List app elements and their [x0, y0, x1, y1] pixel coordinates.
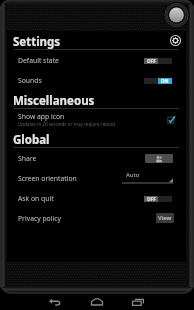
button[interactable]: Ask on quit, off — [144, 196, 172, 202]
button[interactable]: Show app icon — [7, 109, 186, 129]
staticText: Privacy policy — [18, 214, 61, 223]
button[interactable]: Sounds — [7, 70, 186, 90]
button[interactable]: Default state — [7, 50, 186, 70]
staticText: Sounds — [18, 76, 42, 85]
staticText: Default state — [18, 56, 59, 65]
staticText: Updates in 20 seconds or may require reb… — [18, 121, 116, 127]
button[interactable]: Ask on quit — [7, 188, 186, 208]
staticText: Show app icon — [18, 112, 65, 121]
button[interactable]: Show app icon, checked — [167, 116, 175, 124]
button[interactable]: Default state, off — [144, 58, 172, 64]
button[interactable]: Home — [91, 296, 103, 308]
button[interactable]: Share — [145, 154, 173, 163]
staticText: Share — [18, 154, 37, 163]
staticText: Global — [13, 132, 50, 148]
button[interactable]: Global — [7, 129, 186, 148]
button[interactable]: Share — [7, 148, 186, 168]
button[interactable]: Miscellaneous — [7, 90, 186, 109]
button[interactable]: Sounds, on — [144, 78, 172, 84]
button[interactable]: Privacy policy — [7, 208, 186, 228]
staticText: View — [158, 214, 172, 222]
staticText: Screen orientation — [18, 174, 77, 183]
button[interactable]: Settings — [7, 31, 186, 50]
staticText: Miscellaneous — [13, 93, 95, 109]
button[interactable]: Settings — [170, 35, 181, 46]
button[interactable]: View — [156, 213, 174, 223]
staticText: Ask on quit — [18, 194, 54, 203]
button[interactable]: Auto — [122, 171, 173, 185]
staticText: OFF — [147, 58, 156, 64]
staticText: OFF — [147, 196, 156, 202]
button[interactable]: Back — [49, 296, 61, 308]
staticText: ON — [161, 78, 169, 84]
staticText: Auto — [126, 171, 140, 179]
button[interactable]: Recent apps — [132, 296, 144, 308]
button[interactable]: Screen orientation — [7, 168, 186, 188]
staticText: Settings — [13, 34, 61, 50]
